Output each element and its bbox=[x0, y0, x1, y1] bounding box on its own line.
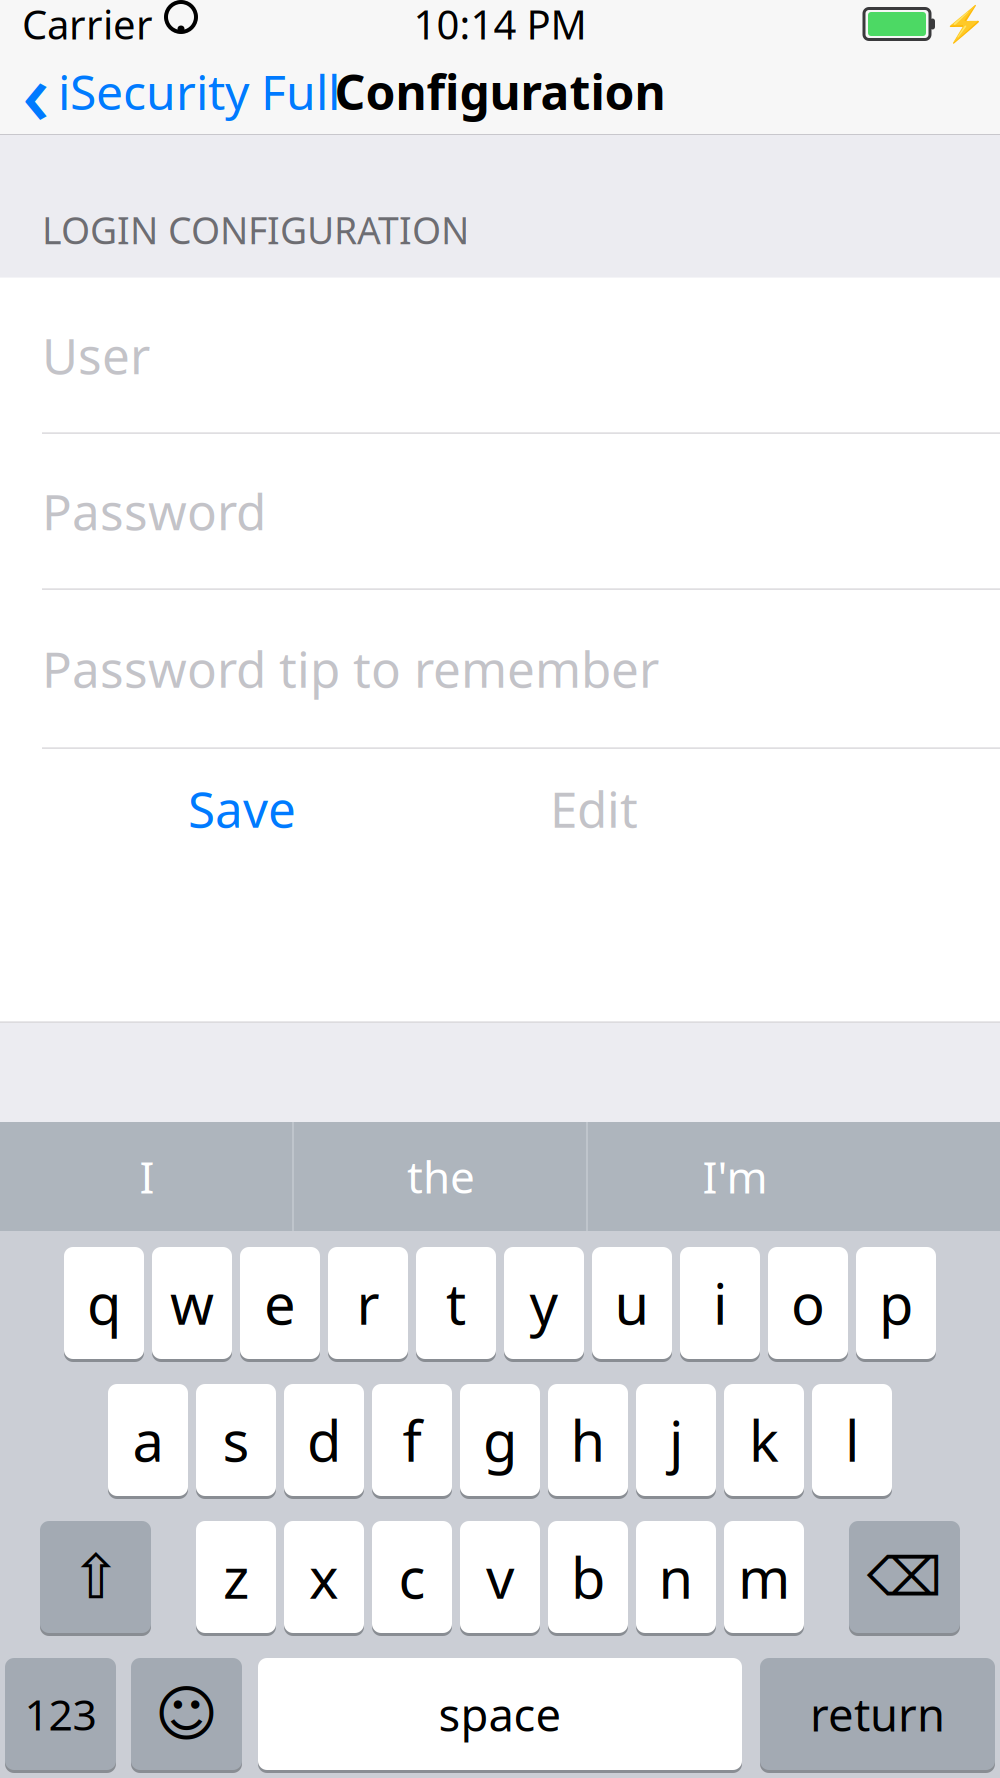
staticText: ☺ bbox=[154, 1679, 218, 1749]
staticText: Save bbox=[188, 776, 296, 841]
staticText: ⇧ bbox=[70, 1542, 121, 1612]
staticText: 123 bbox=[24, 1686, 96, 1742]
button[interactable]: h bbox=[548, 1384, 628, 1499]
staticText: Password tip to remember bbox=[42, 636, 659, 701]
button[interactable]: u bbox=[592, 1247, 672, 1362]
staticText: m bbox=[738, 1540, 790, 1614]
staticText: b bbox=[571, 1540, 605, 1614]
button[interactable]: x bbox=[284, 1521, 364, 1636]
staticText: h bbox=[570, 1403, 605, 1477]
button[interactable]: y bbox=[504, 1247, 584, 1362]
button[interactable]: t bbox=[416, 1247, 496, 1362]
staticText: p bbox=[879, 1266, 913, 1340]
button[interactable]: f bbox=[372, 1384, 452, 1499]
staticText: return bbox=[810, 1684, 945, 1744]
button[interactable]: g bbox=[460, 1384, 540, 1499]
button[interactable]: c bbox=[372, 1521, 452, 1636]
button[interactable]: I'm bbox=[588, 1122, 882, 1231]
staticText: User bbox=[42, 322, 150, 388]
staticText: l bbox=[845, 1403, 859, 1477]
button[interactable]: the bbox=[294, 1122, 588, 1231]
button[interactable]: I bbox=[0, 1122, 294, 1231]
button[interactable]: q bbox=[64, 1247, 144, 1362]
button[interactable]: z bbox=[196, 1521, 276, 1636]
button[interactable]: p bbox=[856, 1247, 936, 1362]
button[interactable]: Shift bbox=[40, 1521, 151, 1636]
staticText: v bbox=[486, 1540, 514, 1614]
staticText: c bbox=[398, 1540, 425, 1614]
staticText: a bbox=[132, 1403, 163, 1477]
button[interactable]: j bbox=[636, 1384, 716, 1499]
staticText: Carrier bbox=[22, 0, 153, 50]
button[interactable]: return bbox=[760, 1658, 995, 1773]
staticText: space bbox=[438, 1684, 561, 1744]
staticText: Password bbox=[42, 478, 266, 544]
staticText: the bbox=[407, 1147, 475, 1206]
button[interactable]: n bbox=[636, 1521, 716, 1636]
staticText: u bbox=[614, 1266, 649, 1340]
staticText: d bbox=[307, 1403, 341, 1477]
button[interactable]: w bbox=[152, 1247, 232, 1362]
button[interactable]: s bbox=[196, 1384, 276, 1499]
staticText: x bbox=[309, 1540, 339, 1614]
staticText: o bbox=[791, 1266, 825, 1340]
staticText: q bbox=[87, 1266, 121, 1340]
staticText: iSecurity Full bbox=[58, 60, 340, 123]
staticText: s bbox=[222, 1403, 249, 1477]
staticText: ‹ bbox=[22, 35, 50, 148]
staticText: e bbox=[264, 1266, 296, 1340]
button[interactable]: r bbox=[328, 1247, 408, 1362]
button[interactable]: Delete bbox=[849, 1521, 960, 1636]
button[interactable]: k bbox=[724, 1384, 804, 1499]
staticText: i bbox=[713, 1266, 727, 1340]
staticText: LOGIN CONFIGURATION bbox=[42, 205, 469, 255]
button[interactable]: v bbox=[460, 1521, 540, 1636]
button[interactable]: l bbox=[812, 1384, 892, 1499]
button[interactable]: i bbox=[680, 1247, 760, 1362]
staticText: Edit bbox=[550, 776, 638, 841]
button[interactable]: d bbox=[284, 1384, 364, 1499]
staticText: I bbox=[139, 1147, 154, 1206]
staticText: w bbox=[170, 1266, 214, 1340]
staticText: ⚡ bbox=[943, 4, 986, 44]
button[interactable]: a bbox=[108, 1384, 188, 1499]
button[interactable]: e bbox=[240, 1247, 320, 1362]
button[interactable]: m bbox=[724, 1521, 804, 1636]
staticText: y bbox=[529, 1266, 558, 1340]
staticText: k bbox=[749, 1403, 779, 1477]
button[interactable]: ‹ bbox=[0, 27, 340, 156]
staticText: 10:14 PM bbox=[413, 0, 586, 50]
staticText: t bbox=[446, 1266, 466, 1340]
staticText: I'm bbox=[702, 1147, 767, 1206]
staticText: j bbox=[669, 1403, 683, 1477]
button[interactable]: Numbers bbox=[5, 1658, 116, 1773]
button[interactable]: o bbox=[768, 1247, 848, 1362]
staticText: f bbox=[402, 1403, 421, 1477]
button[interactable]: Edit bbox=[540, 762, 648, 855]
staticText: z bbox=[223, 1540, 249, 1614]
staticText: g bbox=[483, 1403, 517, 1477]
button[interactable]: b bbox=[548, 1521, 628, 1636]
staticText: ⌫ bbox=[867, 1547, 942, 1607]
button[interactable]: Emoji bbox=[131, 1658, 242, 1773]
button[interactable]: Save bbox=[178, 762, 306, 855]
button[interactable]: space bbox=[258, 1658, 742, 1773]
staticText: Configuration bbox=[334, 60, 665, 123]
staticText: r bbox=[356, 1266, 379, 1340]
staticText: n bbox=[658, 1540, 693, 1614]
